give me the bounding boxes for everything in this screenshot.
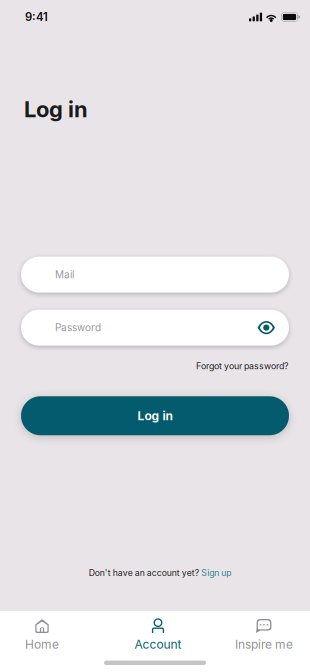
button[interactable]: Account xyxy=(84,611,232,656)
button[interactable]: Forgot your password? xyxy=(196,361,288,371)
staticText: Don't have an account yet? xyxy=(89,567,199,578)
button[interactable]: Password xyxy=(21,310,289,346)
button[interactable]: Inspire me xyxy=(232,611,296,656)
staticText: Account xyxy=(134,637,181,652)
button[interactable]: Home xyxy=(0,611,84,656)
staticText: Password xyxy=(55,322,101,334)
staticText: Sign up xyxy=(201,567,231,578)
staticText: Forgot your password? xyxy=(196,361,288,371)
staticText: Log in xyxy=(137,408,172,423)
staticText: Inspire me xyxy=(235,637,293,652)
staticText: 9:41 xyxy=(25,10,48,24)
button[interactable]: Sign up xyxy=(201,567,231,578)
staticText: Log in xyxy=(24,96,88,123)
staticText: Mail xyxy=(55,269,74,281)
button[interactable]: Log in xyxy=(21,396,289,435)
staticText: Home xyxy=(25,637,59,652)
button[interactable]: Mail xyxy=(21,257,289,293)
